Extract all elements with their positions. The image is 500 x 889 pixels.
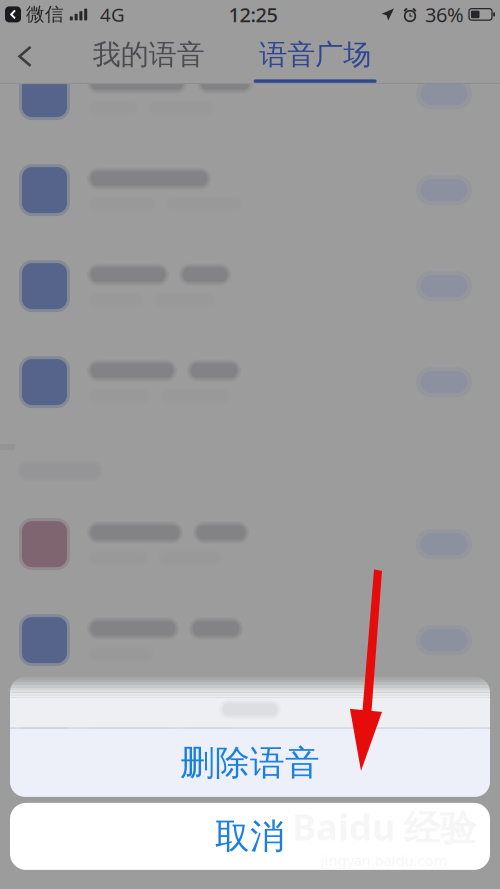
staticText: 微信 <box>26 3 64 26</box>
staticText: 12:25 <box>228 1 277 28</box>
button[interactable]: Back to WeChat <box>0 3 64 26</box>
staticText: 语音广场 <box>259 37 371 72</box>
staticText: 4G <box>100 2 125 27</box>
staticText: 删除语音 <box>180 742 320 784</box>
staticText: jingyan.baidu.com <box>320 851 447 870</box>
staticText: 我的语音 <box>93 37 205 72</box>
staticText: Baidu 经验 <box>292 803 476 851</box>
staticText: 36% <box>425 1 464 28</box>
button[interactable]: 我的语音 <box>87 30 210 83</box>
staticText: 取消 <box>215 815 285 858</box>
button[interactable]: 删除语音 <box>10 729 490 797</box>
button[interactable]: Back <box>0 30 50 83</box>
button[interactable]: 语音广场 <box>254 30 377 83</box>
button[interactable]: Baidu 经验 <box>10 803 490 870</box>
